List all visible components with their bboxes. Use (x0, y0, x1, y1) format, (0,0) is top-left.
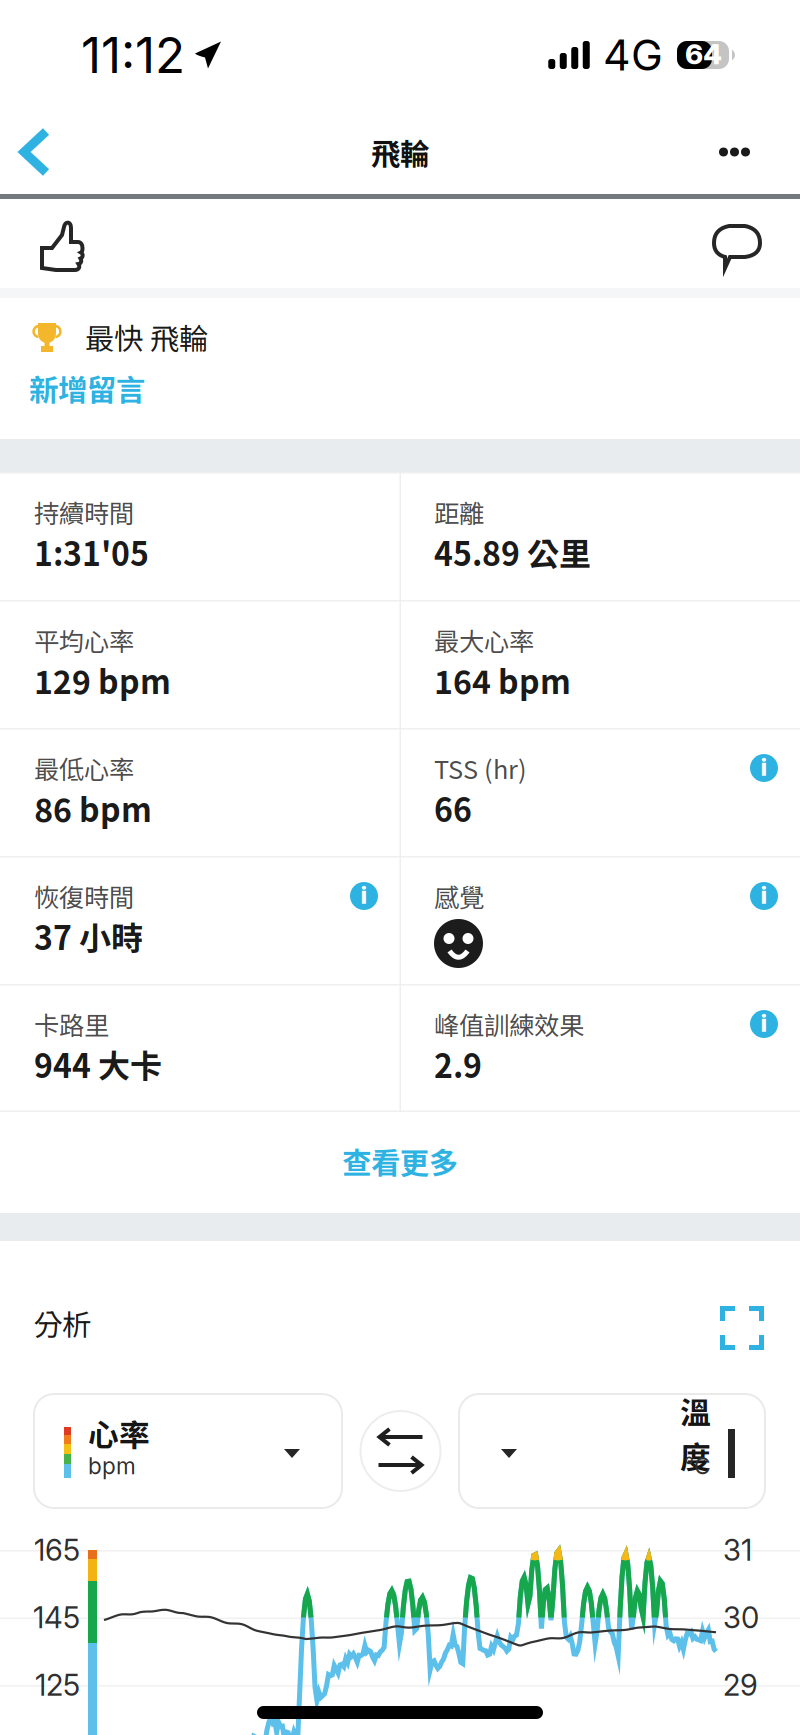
staticText: 最快 飛輪 (85, 316, 208, 358)
staticText: 感覺 (434, 878, 484, 914)
staticText: 145 (33, 1600, 80, 1635)
button[interactable]: Back (0, 110, 70, 194)
button[interactable]: 查看更多 (0, 1132, 800, 1190)
staticText: 1:31'05 (34, 529, 149, 575)
staticText: 30 (723, 1600, 759, 1635)
button[interactable]: More options (687, 110, 782, 194)
staticText: 分析 (33, 1302, 91, 1344)
staticText: 165 (34, 1532, 80, 1568)
staticText: i (760, 752, 767, 781)
staticText: 恢復時間 (34, 878, 134, 914)
staticText: i (760, 1008, 767, 1037)
staticText: 164 bpm (434, 657, 571, 703)
button[interactable]: Like (0, 199, 106, 288)
staticText: 11:12 (81, 25, 185, 85)
staticText: TSS (hr) (434, 750, 527, 786)
staticText: i (760, 880, 767, 909)
staticText: 卡路里 (34, 1006, 109, 1042)
staticText: 飛輪 (371, 131, 429, 173)
staticText: 溫度 (680, 1389, 711, 1477)
staticText: i (360, 880, 367, 909)
staticText: 最低心率 (34, 750, 134, 786)
staticText: 37 小時 (34, 913, 143, 959)
staticText: 944 大卡 (34, 1041, 162, 1087)
staticText: 29 (723, 1667, 758, 1703)
staticText: 平均心率 (34, 622, 134, 658)
button[interactable]: Full screen (706, 1292, 778, 1364)
button[interactable]: 溫度 (459, 1394, 765, 1508)
button[interactable]: Swap metrics (360, 1411, 440, 1491)
staticText: 125 (35, 1667, 80, 1703)
staticText: 新增留言 (29, 367, 145, 409)
button[interactable]: 新增留言 (0, 360, 800, 416)
staticText: 64 (685, 37, 722, 71)
button[interactable]: 心率 (34, 1394, 342, 1508)
staticText: 心率 (88, 1411, 150, 1455)
staticText: 66 (434, 785, 472, 831)
staticText: °C (684, 1452, 711, 1480)
staticText: 45.89 公里 (434, 529, 591, 575)
staticText: 4G (603, 29, 663, 81)
staticText: 86 bpm (34, 785, 152, 831)
staticText: 持續時間 (34, 494, 134, 530)
staticText: 最大心率 (434, 622, 534, 658)
staticText: 峰值訓練效果 (434, 1006, 584, 1042)
staticText: 129 bpm (34, 657, 171, 703)
staticText: bpm (88, 1452, 136, 1480)
staticText: 2.9 (434, 1041, 482, 1087)
button[interactable]: Comment (692, 199, 800, 288)
staticText: 查看更多 (342, 1140, 458, 1182)
staticText: 31 (723, 1532, 752, 1568)
staticText: 距離 (434, 494, 484, 530)
